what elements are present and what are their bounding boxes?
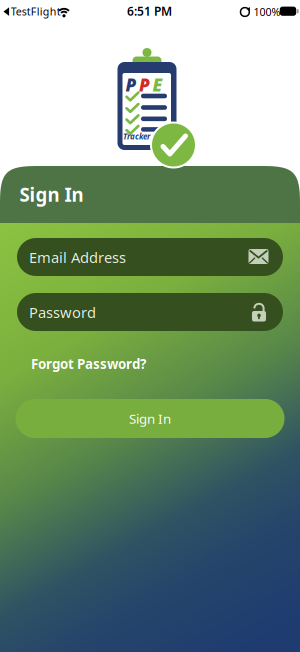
- staticText: E: [152, 73, 162, 96]
- staticText: P: [139, 73, 150, 96]
- button[interactable]: Email Address: [17, 238, 283, 276]
- staticText: Tracker: [123, 131, 150, 142]
- staticText: Sign In: [129, 410, 171, 427]
- button[interactable]: Forgot Password?: [31, 355, 146, 373]
- staticText: P: [125, 73, 136, 96]
- staticText: Forgot Password?: [31, 355, 146, 373]
- staticText: Sign In: [19, 182, 83, 207]
- staticText: Password: [29, 302, 96, 322]
- button[interactable]: Password: [17, 293, 283, 331]
- staticText: TestFlight: [11, 4, 61, 18]
- staticText: 6:51 PM: [127, 3, 172, 19]
- button[interactable]: Sign In: [15, 399, 284, 438]
- button[interactable]: Back to TestFlight: [0, 0, 72, 22]
- staticText: Email Address: [29, 247, 126, 267]
- staticText: 100%: [253, 5, 280, 19]
